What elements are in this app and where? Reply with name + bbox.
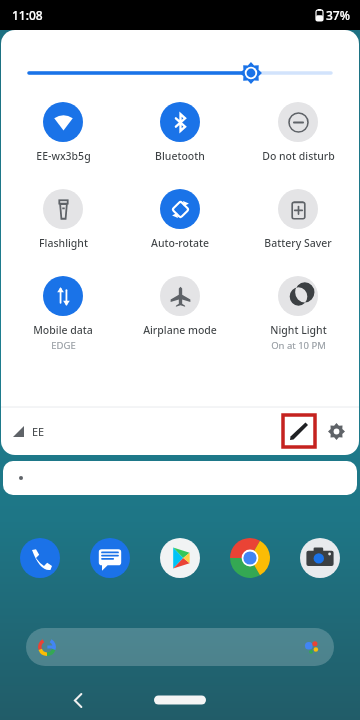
button[interactable]: Bluetooth <box>124 100 236 165</box>
button[interactable]: Flashlight <box>7 187 119 252</box>
button[interactable]: Back <box>62 688 94 712</box>
staticText: Airplane mode <box>143 323 217 337</box>
button[interactable]: Messages <box>88 536 132 580</box>
staticText: Do not disturb <box>262 149 335 163</box>
staticText: On at 10 PM <box>271 339 326 352</box>
button[interactable]: Phone <box>18 536 62 580</box>
button[interactable]: EE-wx3b5g <box>7 100 119 165</box>
button[interactable] <box>3 461 357 495</box>
staticText: 11:08 <box>12 7 43 23</box>
button[interactable]: Do not disturb <box>242 100 354 165</box>
button[interactable]: Auto-rotate <box>124 187 236 252</box>
button[interactable]: Chrome <box>228 536 272 580</box>
staticText: Auto-rotate <box>151 236 209 250</box>
button[interactable]: Mobile data <box>7 274 119 354</box>
staticText: Bluetooth <box>155 149 205 163</box>
button[interactable]: Play Store <box>158 536 202 580</box>
button[interactable] <box>26 628 334 666</box>
button[interactable]: Night Light <box>242 274 354 354</box>
button[interactable]: EE <box>13 424 45 439</box>
button[interactable]: Home <box>154 693 206 707</box>
staticText: EE <box>32 424 45 439</box>
staticText: 37% <box>326 7 350 23</box>
button[interactable]: Edit tiles <box>283 415 315 447</box>
staticText: Flashlight <box>39 236 88 250</box>
button[interactable]: Settings <box>321 416 351 446</box>
staticText: EDGE <box>51 339 76 352</box>
staticText: EE-wx3b5g <box>36 149 91 163</box>
staticText: Battery Saver <box>264 236 332 250</box>
button[interactable]: Camera <box>298 536 342 580</box>
button[interactable]: Battery Saver <box>242 187 354 252</box>
staticText: Mobile data <box>33 323 93 337</box>
staticText: Night Light <box>270 323 327 337</box>
button[interactable]: Airplane mode <box>124 274 236 339</box>
